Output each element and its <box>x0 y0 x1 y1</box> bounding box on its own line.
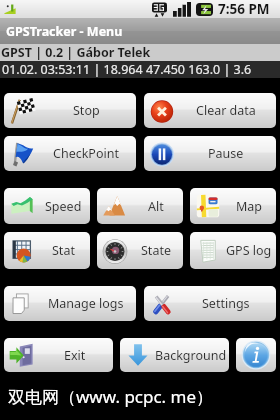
staticText: Pause <box>208 145 244 162</box>
staticText: GPST | 0.2 | Gábor Telek <box>1 44 151 61</box>
button[interactable]: CheckPoint <box>4 136 136 171</box>
staticText: Exit <box>64 347 86 364</box>
button[interactable]: State <box>97 232 183 269</box>
staticText: GPSTracker - Menu <box>6 23 123 40</box>
staticText: Manage logs <box>48 295 124 312</box>
staticText: GPS log <box>226 242 272 259</box>
button[interactable]: Map <box>190 188 276 224</box>
button[interactable]: Background <box>120 338 229 372</box>
staticText: Stat <box>52 242 75 259</box>
staticText: Clear data <box>196 102 256 119</box>
button[interactable]: Manage logs <box>4 286 136 321</box>
staticText: Map <box>236 198 263 215</box>
staticText: 01.02. 03:53:11 | 18.964 47.450 163.0 | … <box>2 61 252 78</box>
staticText: 双电网（www. pcpc. me） <box>8 385 214 408</box>
button[interactable]: Clear data <box>144 93 276 128</box>
button[interactable]: Pause <box>144 136 276 171</box>
staticText: Stop <box>73 102 100 119</box>
staticText: Background <box>155 347 227 364</box>
button[interactable]: Stat <box>4 232 90 269</box>
staticText: State <box>141 242 171 259</box>
button[interactable]: Exit <box>4 338 113 372</box>
staticText: Settings <box>202 295 250 312</box>
staticText: Alt <box>148 198 164 215</box>
button[interactable]: Stop <box>4 93 136 128</box>
button[interactable]: Alt <box>97 188 183 224</box>
staticText: Speed <box>45 198 82 215</box>
button[interactable]: Settings <box>144 286 276 321</box>
button[interactable]: About <box>236 338 276 372</box>
button[interactable]: GPS log <box>190 232 276 269</box>
staticText: 7:56 PM <box>218 0 270 18</box>
staticText: CheckPoint <box>53 145 119 162</box>
button[interactable]: Speed <box>4 188 90 224</box>
